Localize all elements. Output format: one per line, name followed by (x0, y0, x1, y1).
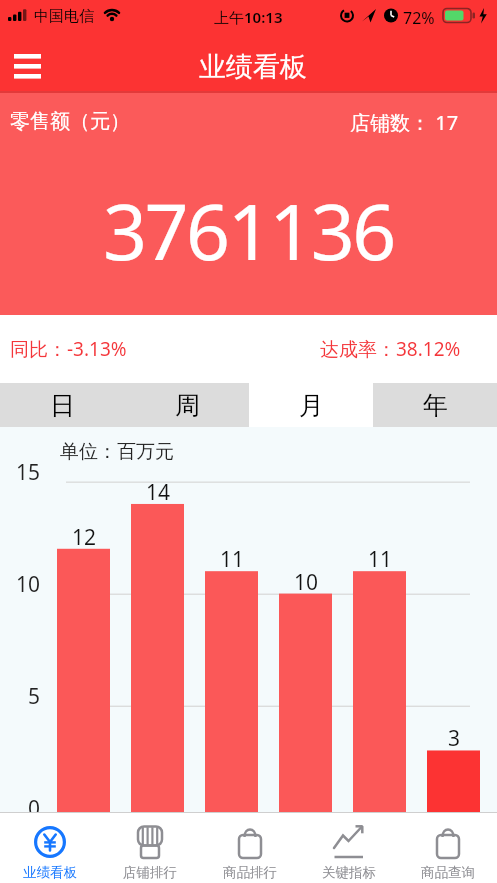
staticText: 中国电信 (34, 7, 94, 26)
staticText: 3761136 (103, 178, 394, 283)
staticText: 月 (299, 390, 324, 421)
button[interactable]: 关键指标 (299, 813, 398, 883)
staticText: 15 (16, 458, 41, 487)
staticText: 店铺排行 (123, 864, 177, 881)
staticText: 11 (368, 545, 393, 574)
staticText: 店铺数： 17 (350, 109, 459, 136)
button[interactable] (6, 44, 48, 88)
button[interactable]: 日 (0, 383, 125, 427)
button[interactable]: 商品排行 (200, 813, 299, 883)
staticText: 日 (50, 390, 75, 421)
staticText: 业绩看板 (199, 50, 307, 84)
button[interactable]: 商品查询 (398, 813, 497, 883)
staticText: 关键指标 (322, 864, 376, 881)
staticText: 商品查询 (421, 864, 475, 881)
staticText: 14 (146, 478, 171, 507)
button[interactable]: 月 (249, 383, 373, 427)
staticText: 3 (448, 724, 461, 753)
button[interactable]: 周 (125, 383, 249, 427)
staticText: 10 (294, 568, 319, 597)
staticText: 0 (28, 794, 41, 812)
staticText: 上午10:13 (214, 7, 283, 27)
staticText: 零售额（元） (10, 109, 130, 134)
staticText: 5 (28, 682, 41, 711)
staticText: 同比：-3.13% (10, 336, 127, 362)
staticText: 业绩看板 (23, 864, 77, 881)
button[interactable]: 店铺排行 (100, 813, 200, 883)
button[interactable]: 年 (373, 383, 497, 427)
staticText: 商品排行 (223, 864, 277, 881)
staticText: 周 (175, 390, 200, 421)
staticText: 11 (220, 545, 245, 574)
button[interactable]: 业绩看板 (0, 813, 100, 883)
staticText: 10 (16, 570, 41, 599)
staticText: 达成率：38.12% (320, 336, 461, 362)
staticText: 年 (423, 390, 448, 421)
staticText: 12 (72, 523, 97, 552)
staticText: 72% (403, 7, 435, 29)
staticText: 单位：百万元 (60, 440, 174, 464)
